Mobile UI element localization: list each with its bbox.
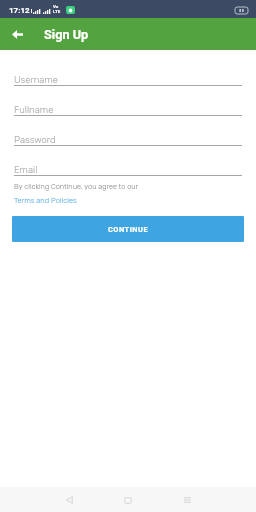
button[interactable]: Back xyxy=(58,489,80,511)
button[interactable]: Email xyxy=(14,164,242,176)
staticText: LTE xyxy=(53,9,61,14)
staticText: By clicking Continue, you agree to our xyxy=(14,182,139,191)
staticText: CONTINUE xyxy=(108,225,149,234)
button[interactable]: Home xyxy=(117,489,139,511)
staticText: Vo xyxy=(53,4,59,9)
staticText: Terms and Policies xyxy=(14,196,77,205)
button[interactable]: CONTINUE xyxy=(12,216,244,242)
button[interactable]: Back xyxy=(7,24,28,45)
staticText: Email xyxy=(14,164,38,175)
button[interactable]: Terms and Policies xyxy=(14,196,77,205)
button[interactable]: Fullname xyxy=(14,104,242,116)
button[interactable]: Password xyxy=(14,134,242,146)
staticText: Fullname xyxy=(14,104,54,115)
staticText: 17:12 xyxy=(9,6,30,15)
button[interactable]: Recent apps xyxy=(176,489,198,511)
button[interactable]: Username xyxy=(14,74,242,86)
staticText: Username xyxy=(14,74,58,85)
staticText: Password xyxy=(14,134,56,145)
staticText: Sign Up xyxy=(44,27,89,42)
